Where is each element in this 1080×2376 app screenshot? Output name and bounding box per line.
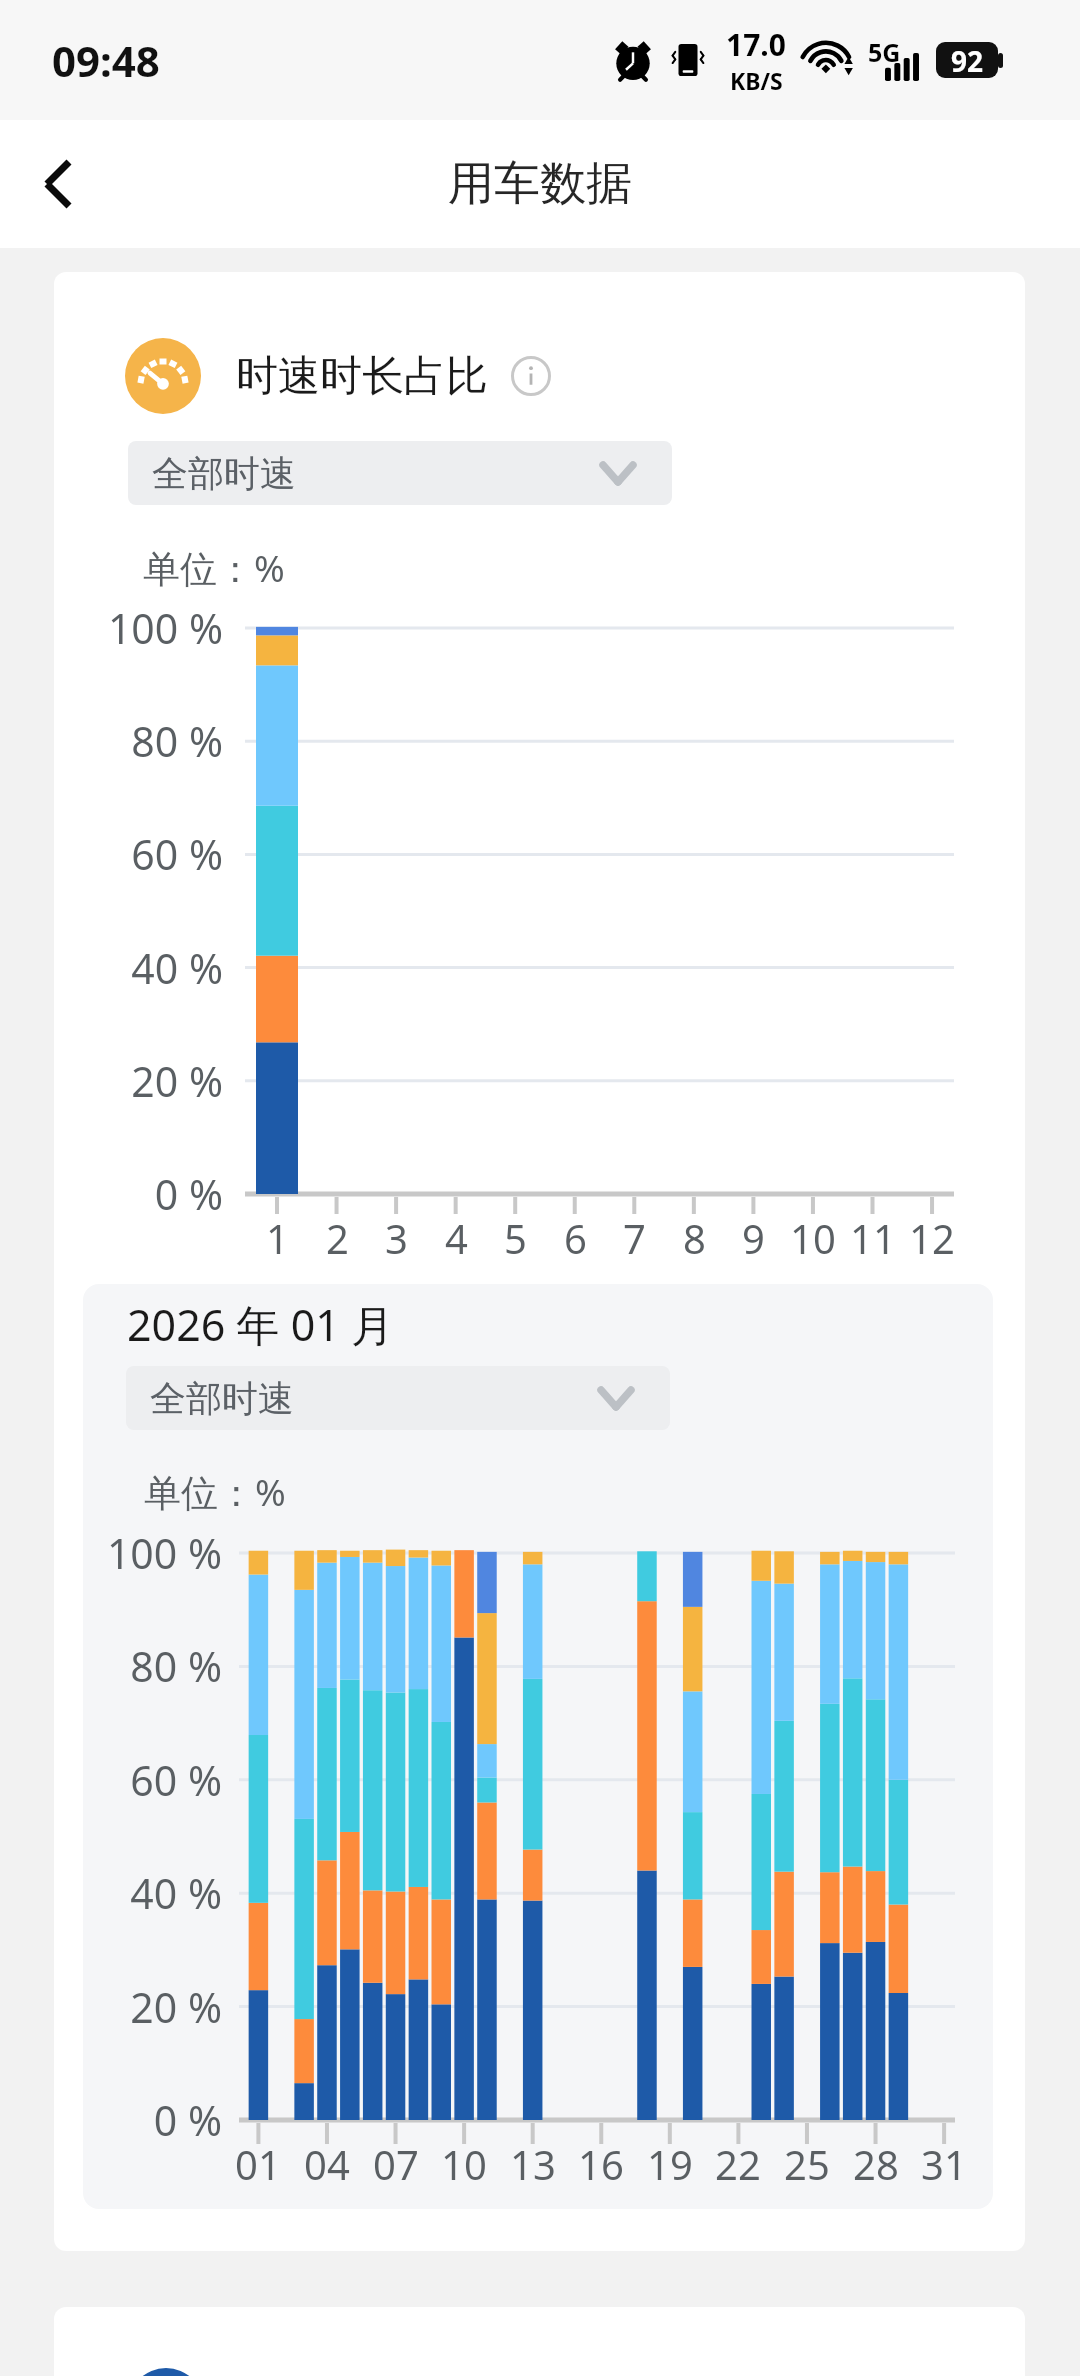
- staticText: 60 %: [130, 1752, 222, 1808]
- staticText: 09:48: [52, 32, 160, 89]
- staticText: 2026 年 01 月: [127, 1295, 395, 1354]
- button[interactable]: 全部时速: [126, 1366, 670, 1430]
- staticText: 全部时速: [152, 451, 296, 496]
- staticText: 单位：%: [143, 542, 285, 593]
- staticText: 6: [564, 1211, 587, 1265]
- staticText: 80 %: [131, 713, 223, 769]
- staticText: 07: [373, 2137, 419, 2191]
- staticText: 10: [790, 1211, 836, 1265]
- staticText: 92: [951, 42, 984, 78]
- staticText: 9: [742, 1211, 765, 1265]
- staticText: 5G: [868, 35, 901, 69]
- staticText: 20 %: [131, 1053, 223, 1109]
- staticText: 100 %: [107, 600, 223, 656]
- staticText: KB/S: [730, 65, 783, 96]
- staticText: 22: [715, 2137, 761, 2191]
- staticText: 0 %: [153, 2092, 222, 2148]
- staticText: 17.0: [726, 24, 786, 65]
- staticText: 40 %: [131, 940, 223, 996]
- staticText: 4: [445, 1211, 468, 1265]
- staticText: 100 %: [106, 1525, 222, 1581]
- button[interactable]: 时速时长占比: [125, 338, 551, 414]
- staticText: 10: [441, 2137, 487, 2191]
- staticText: 40 %: [130, 1865, 222, 1921]
- staticText: 8: [683, 1211, 706, 1265]
- staticText: 60 %: [131, 826, 223, 882]
- staticText: 全部时速: [150, 1376, 294, 1421]
- staticText: 12: [909, 1211, 955, 1265]
- staticText: 时速时长占比: [236, 350, 488, 403]
- staticText: 1: [266, 1211, 289, 1265]
- staticText: 20 %: [130, 1979, 222, 2035]
- staticText: 25: [784, 2137, 830, 2191]
- staticText: 11: [850, 1211, 896, 1265]
- staticText: 19: [647, 2137, 693, 2191]
- staticText: 80 %: [130, 1638, 222, 1694]
- staticText: 单位：%: [144, 1466, 286, 1517]
- staticText: 2: [326, 1211, 349, 1265]
- staticText: 28: [853, 2137, 899, 2191]
- button[interactable]: 全部时速: [128, 441, 672, 505]
- staticText: 04: [304, 2137, 350, 2191]
- staticText: 3: [385, 1211, 408, 1265]
- staticText: 用车数据: [448, 155, 632, 213]
- staticText: 13: [510, 2137, 556, 2191]
- staticText: 0 %: [154, 1166, 223, 1222]
- button[interactable]: Info: [511, 356, 551, 396]
- staticText: 01: [235, 2137, 281, 2191]
- button[interactable]: Back: [18, 144, 98, 224]
- staticText: 5: [504, 1211, 527, 1265]
- staticText: 31: [921, 2137, 967, 2191]
- staticText: 16: [578, 2137, 624, 2191]
- staticText: 7: [623, 1211, 646, 1265]
